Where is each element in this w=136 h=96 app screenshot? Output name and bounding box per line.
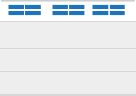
button[interactable]: More options xyxy=(94,0,132,21)
button[interactable] xyxy=(0,71,136,94)
button[interactable]: Navigate up xyxy=(6,0,44,21)
button[interactable] xyxy=(0,21,136,48)
button[interactable]: Search xyxy=(50,0,88,21)
button[interactable] xyxy=(0,48,136,71)
